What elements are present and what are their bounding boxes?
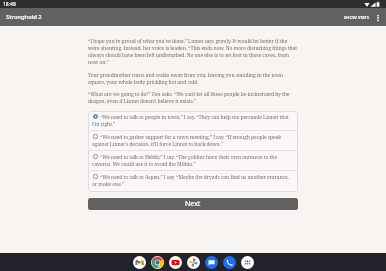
staticText: “I hope you're proud of what you've done…	[88, 38, 298, 66]
button[interactable]: “We need to gather support for a town me…	[88, 131, 298, 150]
button[interactable]: SHOW STATS	[341, 13, 373, 23]
button[interactable]: “We need to talk to Heldir,” I say. “The…	[88, 151, 298, 170]
staticText: Stronghold 2	[6, 13, 42, 21]
button[interactable]: “We need to talk to Aspen,” I say. “Mayb…	[88, 171, 298, 190]
staticText: “We need to gather support for a town me…	[92, 134, 294, 148]
staticText: “We need to talk to Aspen,” I say. “Mayb…	[92, 174, 294, 188]
button[interactable]: Messages	[205, 256, 218, 269]
staticText: Your grandmother turns and walks away fr…	[88, 72, 298, 86]
staticText: 18:48	[3, 1, 16, 8]
button[interactable]: Next	[88, 198, 298, 210]
staticText: SHOW STATS	[344, 15, 370, 21]
button[interactable]: YouTube	[169, 256, 182, 269]
button[interactable]: All apps	[241, 256, 254, 269]
button[interactable]: Photos	[187, 256, 200, 269]
staticText: “We need to talk to Heldir,” I say. “The…	[92, 154, 294, 168]
button[interactable]: More options	[371, 11, 384, 24]
staticText: Next	[185, 199, 201, 209]
button[interactable]: Phone	[223, 256, 236, 269]
button[interactable]: “We need to talk to people in town,” I s…	[88, 111, 298, 130]
button[interactable]: Chrome	[151, 256, 164, 269]
staticText: “We need to talk to people in town,” I s…	[92, 114, 294, 128]
staticText: “What are we going to do?” Fen asks. “We…	[88, 91, 298, 105]
button[interactable]: Gmail	[133, 256, 146, 269]
